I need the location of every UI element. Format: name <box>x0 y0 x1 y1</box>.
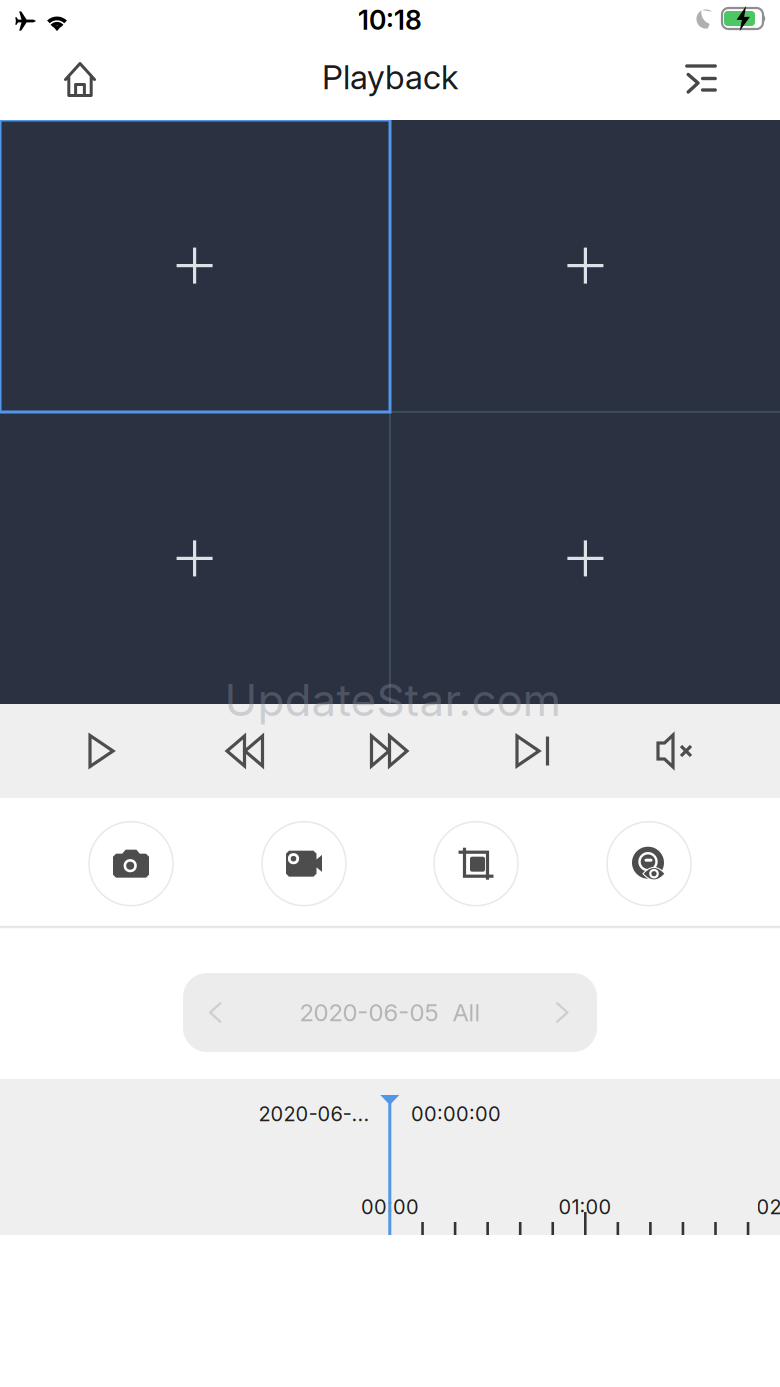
staticText: UpdateStar.com <box>224 673 561 727</box>
staticText: 01:00 <box>558 1195 611 1219</box>
button[interactable]: Snapshot <box>89 822 173 906</box>
staticText: 00:00 <box>361 1195 419 1219</box>
button[interactable]: Layout <box>658 43 744 117</box>
button[interactable]: Next frame <box>488 711 578 791</box>
staticText: Playback <box>322 57 458 97</box>
button[interactable]: Camera channel 4 <box>391 413 780 704</box>
button[interactable]: Camera channel 3 <box>0 413 389 704</box>
staticText: 02: <box>756 1195 780 1219</box>
button[interactable]: Camera channel 2 <box>391 120 780 411</box>
staticText: 2020-06-05 All <box>299 998 480 1027</box>
staticText: 10:18 <box>358 4 422 36</box>
button[interactable]: Home <box>37 42 123 116</box>
button[interactable]: Rewind <box>200 711 290 791</box>
button[interactable]: Mute <box>633 711 723 791</box>
staticText: 00:00:00 <box>411 1102 501 1126</box>
button[interactable]: Camera channel 1 <box>0 120 389 411</box>
staticText: 2020-06-... <box>258 1102 369 1126</box>
button[interactable]: Play <box>56 711 146 791</box>
button[interactable]: Fast forward <box>344 711 434 791</box>
button[interactable]: Select date: 2020-06-05, All <box>183 973 597 1052</box>
button[interactable]: Smart detection <box>607 822 691 906</box>
button[interactable]: Record <box>262 822 346 906</box>
button[interactable]: Crop <box>434 822 518 906</box>
